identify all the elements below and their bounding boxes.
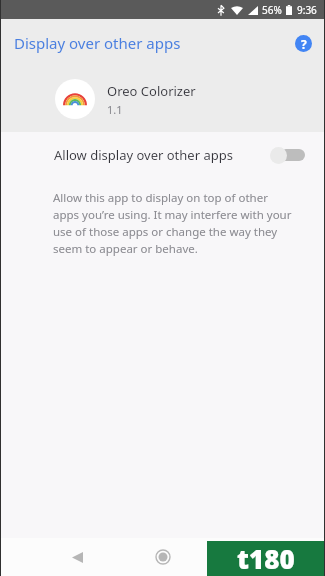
button[interactable]: Allow display over other apps — [0, 133, 325, 177]
staticText: Allow this app to display on top of othe… — [53, 190, 297, 257]
staticText: 56% — [262, 3, 282, 17]
staticText: ? — [301, 36, 307, 52]
button[interactable]: Home — [150, 544, 176, 570]
staticText: t180 — [237, 541, 295, 576]
button[interactable]: Allow display over other apps toggle — [270, 144, 306, 166]
button[interactable]: Back — [64, 544, 90, 570]
button[interactable]: Help — [289, 29, 317, 57]
staticText: 1.1 — [107, 102, 123, 117]
button[interactable]: Oreo Colorizer — [0, 66, 325, 132]
staticText: Allow display over other apps — [54, 146, 233, 164]
staticText: 9:36 — [297, 3, 317, 17]
staticText: Display over other apps — [14, 33, 181, 53]
staticText: Oreo Colorizer — [107, 82, 196, 100]
